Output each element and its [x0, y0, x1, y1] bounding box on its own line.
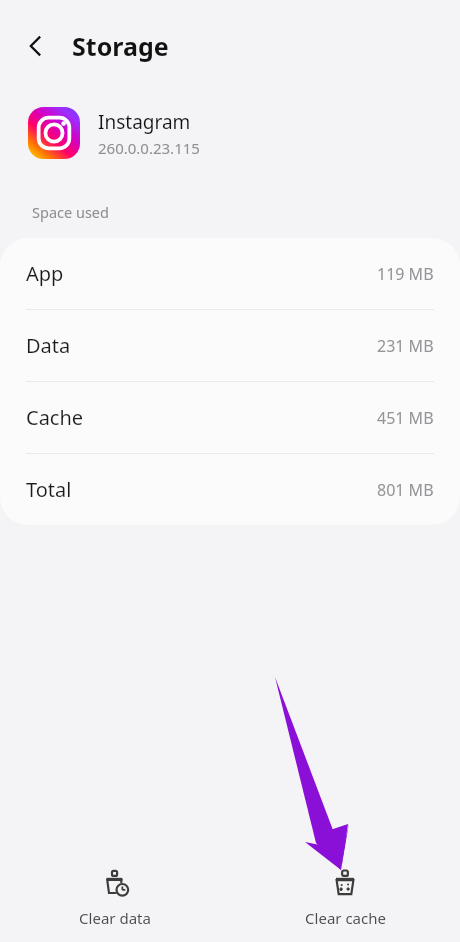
staticText: 231 MB: [377, 335, 434, 357]
button[interactable]: Instagram: [0, 92, 460, 174]
staticText: Instagram: [98, 109, 191, 135]
staticText: 260.0.0.23.115: [98, 138, 200, 158]
staticText: 801 MB: [377, 479, 434, 501]
staticText: 451 MB: [377, 407, 434, 429]
button[interactable]: App: [0, 238, 460, 309]
staticText: 119 MB: [377, 263, 434, 285]
staticText: Storage: [72, 29, 169, 63]
button[interactable]: Total: [0, 454, 460, 525]
button[interactable]: Clear cache: [230, 855, 460, 942]
button[interactable]: Clear data: [0, 855, 230, 942]
staticText: Clear cache: [305, 908, 386, 928]
button[interactable]: Data: [0, 310, 460, 381]
button[interactable]: Cache: [0, 382, 460, 453]
staticText: App: [26, 260, 64, 287]
button[interactable]: Back: [14, 24, 58, 68]
staticText: Total: [26, 476, 72, 503]
staticText: Cache: [26, 404, 84, 431]
staticText: Clear data: [79, 908, 151, 928]
staticText: Data: [26, 332, 71, 359]
staticText: Space used: [32, 202, 109, 222]
